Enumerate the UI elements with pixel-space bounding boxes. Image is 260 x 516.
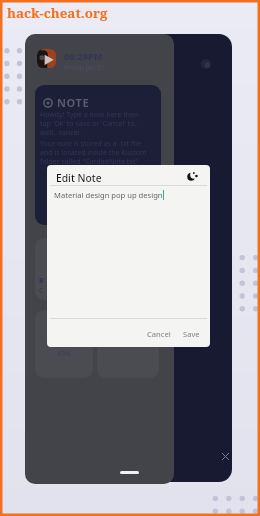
staticText: Save [183,329,200,339]
staticText: C [39,286,44,296]
staticText: Howdy! Type a note here then tap 'Ok' to… [40,110,147,137]
staticText: Material design pop up design [54,190,163,200]
button[interactable]: Save [177,324,206,344]
staticText: 06:29PM [64,50,103,62]
staticText: Edit Note [56,171,102,185]
staticText: Friday, Jan 31 [64,63,105,72]
staticText: hack-cheat.org [7,4,108,22]
staticText: B [39,276,44,286]
staticText: Cancel [147,329,171,339]
button[interactable]: Cancel [141,324,177,344]
button[interactable]: Close [222,453,229,460]
staticText: Your note is stored as a .txt file and i… [40,139,147,166]
button[interactable]: Dark mode [187,170,199,182]
staticText: 49% [57,349,71,359]
staticText: NOTE [57,95,90,110]
